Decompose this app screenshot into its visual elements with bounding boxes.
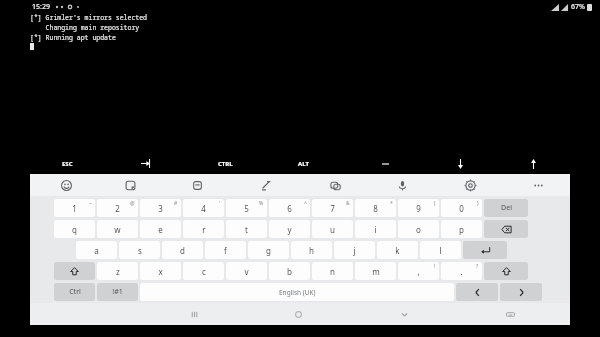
button[interactable]: s [119, 241, 160, 259]
button[interactable]: l [420, 241, 461, 259]
staticText: t [245, 224, 248, 235]
button[interactable]: English (UK) [140, 283, 454, 301]
button[interactable]: Left [456, 283, 498, 301]
button[interactable]: !#1 [97, 283, 138, 301]
button[interactable]: 6 [269, 199, 310, 217]
button[interactable]: a [76, 241, 117, 259]
button[interactable]: g [248, 241, 289, 259]
button[interactable]: u [312, 220, 353, 238]
button[interactable]: 0 [441, 199, 482, 217]
button[interactable]: 4 [183, 199, 224, 217]
button[interactable]: Clipboard [183, 174, 211, 196]
button[interactable]: o [398, 220, 439, 238]
staticText: 4 [201, 203, 206, 214]
button[interactable]: n [312, 262, 353, 280]
staticText: q [72, 224, 77, 235]
button[interactable] [359, 153, 411, 174]
staticText: m [372, 266, 380, 277]
button[interactable]: 3 [140, 199, 181, 217]
button[interactable]: i [355, 220, 396, 238]
button[interactable]: d [162, 241, 203, 259]
button[interactable]: ESC [41, 153, 93, 174]
button[interactable]: UP [507, 153, 559, 174]
button[interactable]: 1 [54, 199, 95, 217]
staticText: [*] Grimler's mirrors selected [30, 13, 148, 22]
staticText: % [259, 200, 264, 207]
button[interactable]: c [183, 262, 224, 280]
staticText: v [244, 266, 249, 277]
button[interactable]: Del [484, 199, 528, 217]
button[interactable]: j [334, 241, 375, 259]
staticText: n [330, 266, 335, 277]
button[interactable]: e [140, 220, 181, 238]
button[interactable]: Shift [54, 262, 95, 280]
button[interactable]: f [205, 241, 246, 259]
staticText: 67% [571, 2, 585, 12]
staticText: z [116, 266, 120, 277]
button[interactable]: x [140, 262, 181, 280]
button[interactable]: z [97, 262, 138, 280]
staticText: k [395, 245, 400, 256]
staticText: Ctrl [69, 287, 81, 297]
button[interactable]: 8 [355, 199, 396, 217]
button[interactable]: Recents [178, 303, 210, 325]
staticText: ~ [89, 200, 92, 207]
button[interactable]: GIF [321, 174, 349, 196]
button[interactable]: h [291, 241, 332, 259]
button[interactable]: 5 [226, 199, 267, 217]
button[interactable]: t [226, 220, 267, 238]
staticText: ^ [304, 200, 307, 207]
button[interactable]: k [377, 241, 418, 259]
button[interactable]: Stickers [116, 174, 144, 196]
button[interactable]: q [54, 220, 95, 238]
staticText: s [138, 245, 142, 256]
button[interactable]: p [441, 220, 482, 238]
button[interactable]: DOWN [434, 153, 486, 174]
button[interactable]: Backspace [484, 220, 528, 238]
button[interactable]: Handwriting [252, 174, 280, 196]
staticText: l [439, 245, 442, 256]
staticText: d [180, 245, 185, 256]
staticText: g [266, 245, 271, 256]
button[interactable]: CTRL [199, 153, 251, 174]
staticText: 15:29 [32, 2, 50, 12]
button[interactable]: Settings [456, 174, 484, 196]
button[interactable]: ALT [277, 153, 329, 174]
button[interactable]: Hide keyboard [388, 303, 420, 325]
button[interactable]: y [269, 220, 310, 238]
staticText: 3 [158, 203, 163, 214]
staticText: o [416, 224, 421, 235]
staticText: ? [476, 263, 479, 270]
staticText: . [460, 266, 463, 277]
staticText: 9 [416, 203, 421, 214]
staticText: r [202, 224, 206, 235]
button[interactable]: Enter [463, 241, 507, 259]
button[interactable]: TAB [119, 153, 171, 174]
button[interactable]: 7 [312, 199, 353, 217]
button[interactable]: Home [282, 303, 314, 325]
staticText: Del [501, 203, 512, 213]
staticText: ! [434, 263, 436, 270]
staticText: Changing main repository [30, 23, 140, 32]
button[interactable]: Emoji [52, 174, 80, 196]
staticText: w [114, 224, 121, 235]
button[interactable]: v [226, 262, 267, 280]
button[interactable]: 9 [398, 199, 439, 217]
staticText: c [202, 266, 206, 277]
staticText: CTRL [218, 160, 233, 168]
button[interactable]: w [97, 220, 138, 238]
button[interactable]: Change keyboard [494, 303, 526, 325]
button[interactable]: Shift [484, 262, 528, 280]
button[interactable]: Voice input [388, 174, 416, 196]
button[interactable]: 2 [97, 199, 138, 217]
button[interactable]: . [441, 262, 482, 280]
button[interactable]: r [183, 220, 224, 238]
button[interactable]: , [398, 262, 439, 280]
button[interactable]: More options [524, 174, 552, 196]
button[interactable]: Right [500, 283, 542, 301]
button[interactable]: b [269, 262, 310, 280]
staticText: * [390, 200, 393, 207]
button[interactable]: Ctrl [54, 283, 95, 301]
button[interactable]: m [355, 262, 396, 280]
staticText: 5 [244, 203, 249, 214]
